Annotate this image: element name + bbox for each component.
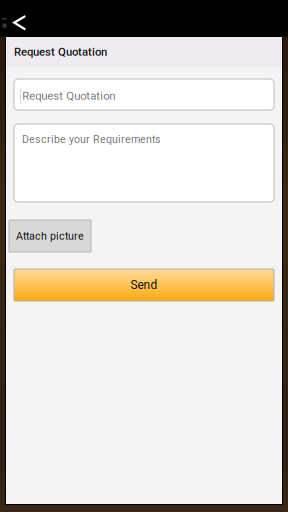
staticText: Describe your Requirements — [22, 133, 161, 145]
staticText: Send — [130, 278, 157, 292]
button[interactable]: Back — [7, 0, 29, 37]
staticText: Request Quotation — [22, 89, 115, 103]
button[interactable]: Send — [14, 269, 274, 301]
button[interactable]: Attach picture — [9, 220, 91, 252]
staticText: Attach picture — [16, 230, 84, 242]
staticText: Request Quotation — [14, 45, 107, 59]
